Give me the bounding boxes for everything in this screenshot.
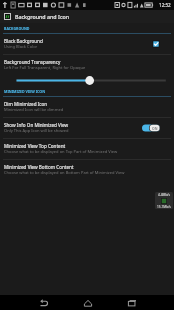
staticText: Minimized View Top Content — [4, 143, 66, 149]
staticText: MINIMIZED VIEW ICON — [4, 89, 46, 94]
staticText: Choose what to be displayed on Top Part … — [4, 149, 118, 155]
button[interactable]: Back — [22, 295, 66, 310]
button[interactable]: Minimized View Top Content — [0, 139, 174, 159]
staticText: Using Black Color — [4, 44, 38, 50]
staticText: ON — [152, 126, 158, 131]
staticText: Minimized View Bottom Content — [4, 164, 74, 170]
button[interactable]: Home — [66, 295, 110, 310]
button[interactable]: Dim Minimized Icon — [0, 97, 174, 117]
button[interactable]: Minimized View Bottom Content — [0, 160, 174, 180]
button[interactable]: Show Info On Minimized View — [0, 118, 174, 138]
staticText: Left For Full Transparent, Right for Opa… — [4, 65, 86, 71]
button[interactable]: Recent apps — [110, 295, 154, 310]
button[interactable]: Black Background — [0, 34, 174, 54]
button[interactable]: Background Transparency — [0, 55, 174, 75]
staticText: 4.4Mb/s — [158, 193, 171, 197]
button[interactable]: Black Background checkbox, checked — [152, 40, 160, 48]
button[interactable]: Background transparency slider — [0, 75, 174, 86]
button[interactable]: Show Info On Minimized View switch, on — [142, 124, 160, 132]
staticText: Black Background — [4, 38, 43, 44]
staticText: Choose what to be displayed on Bottom Pa… — [4, 170, 125, 176]
button[interactable]: Network speed floating widget — [155, 192, 173, 209]
staticText: 15.1Mb/s — [157, 205, 171, 209]
staticText: BACKGROUND — [4, 26, 30, 31]
staticText: Only This App Icon will be showed — [4, 128, 69, 134]
staticText: 12:52 — [159, 2, 171, 8]
staticText: Show Info On Minimized View — [4, 122, 69, 128]
staticText: Background and Icon — [15, 13, 70, 20]
button[interactable]: Background and Icon — [0, 10, 174, 23]
staticText: Minimized Icon will be dimmed — [4, 107, 64, 113]
staticText: Background Transparency — [4, 59, 61, 65]
staticText: Dim Minimized Icon — [4, 101, 48, 107]
